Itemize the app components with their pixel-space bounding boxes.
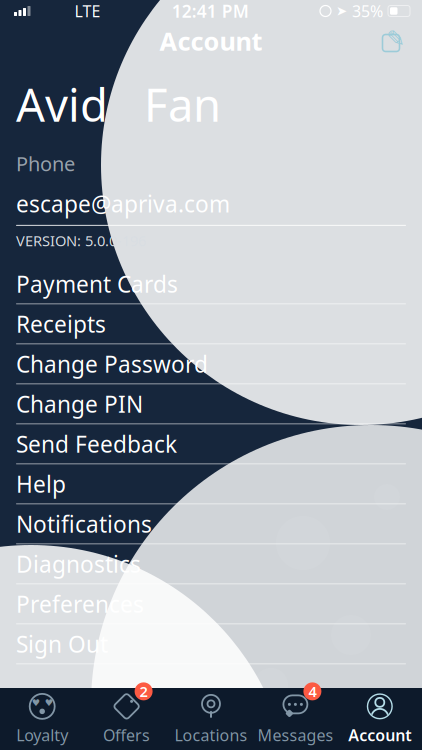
staticText: ♥ [32, 698, 40, 708]
staticText: Avid [16, 74, 108, 134]
button[interactable]: 2 [84, 686, 169, 750]
button[interactable]: Payment Cards [0, 264, 422, 304]
button[interactable]: Sign Out [0, 624, 422, 664]
staticText: Sign Out [16, 629, 108, 659]
button[interactable]: ♥ [0, 686, 84, 750]
staticText: 35% [352, 0, 383, 22]
staticText: VERSION: 5.0.0-196 [16, 231, 146, 250]
staticText: Change Password [16, 349, 208, 379]
button[interactable]: Notifications [0, 504, 422, 544]
button[interactable]: Preferences [0, 584, 422, 624]
staticText: Account [159, 24, 262, 58]
staticText: Locations [174, 724, 247, 746]
staticText: Receipts [16, 309, 106, 339]
staticText: Payment Cards [16, 269, 178, 299]
button[interactable]: Change Password [0, 344, 422, 384]
staticText: ♥ [45, 698, 53, 708]
button[interactable]: Edit [372, 23, 414, 59]
staticText: LTE [74, 0, 100, 22]
button[interactable]: Account [338, 686, 422, 750]
staticText: Loyalty [16, 724, 68, 746]
staticText: Phone [16, 150, 75, 177]
staticText: 4 [308, 682, 316, 701]
staticText: ✎ [386, 26, 405, 52]
button[interactable]: 4 [253, 686, 338, 750]
staticText: Messages [257, 724, 333, 746]
staticText: escape@apriva.com [16, 189, 230, 219]
staticText: Fan [144, 74, 221, 134]
staticText: ➤ [336, 3, 347, 18]
staticText: Offers [103, 724, 150, 746]
staticText: Help [16, 469, 66, 499]
staticText: 12:41 PM [172, 0, 249, 22]
button[interactable]: Send Feedback [0, 424, 422, 464]
staticText: Account [348, 724, 411, 746]
staticText: 2 [140, 682, 148, 701]
button[interactable]: Diagnostics [0, 544, 422, 584]
staticText: Preferences [16, 589, 144, 619]
button[interactable]: Locations [169, 686, 253, 750]
button[interactable]: Help [0, 464, 422, 504]
staticText: Send Feedback [16, 429, 177, 459]
button[interactable]: Change PIN [0, 384, 422, 424]
button[interactable]: Receipts [0, 304, 422, 344]
staticText: Diagnostics [16, 549, 141, 579]
staticText: Notifications [16, 509, 152, 539]
staticText: Change PIN [16, 389, 143, 419]
